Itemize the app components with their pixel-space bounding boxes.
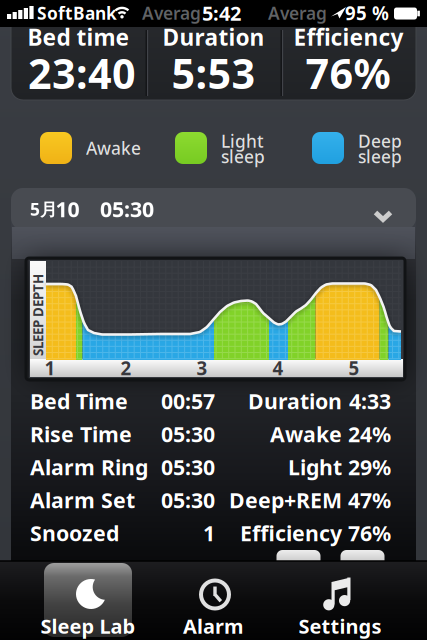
staticText: Efficiency: [293, 22, 403, 52]
staticText: 05:30: [100, 195, 154, 223]
staticText: Deep: [358, 129, 402, 152]
staticText: 23:40: [28, 46, 136, 100]
staticText: 4:33: [349, 387, 391, 415]
staticText: 05:30: [161, 453, 215, 481]
staticText: Deep+REM: [229, 486, 342, 514]
staticText: Light: [288, 453, 342, 481]
staticText: 05:30: [161, 420, 215, 448]
staticText: 76%: [305, 46, 390, 100]
staticText: Rise Time: [30, 420, 132, 448]
staticText: Light: [221, 129, 264, 152]
staticText: Alarm: [183, 613, 244, 639]
button[interactable]: Delete: [340, 550, 384, 568]
button[interactable]: Settings: [295, 563, 385, 637]
staticText: Duration: [162, 22, 264, 52]
staticText: Alarm Set: [30, 486, 135, 514]
staticText: 10: [55, 195, 79, 223]
staticText: sleep: [358, 145, 402, 168]
button[interactable]: 5月: [11, 188, 416, 230]
staticText: 47%: [348, 486, 391, 514]
staticText: 95 %: [345, 1, 389, 25]
staticText: Bed time: [27, 22, 129, 52]
staticText: 24%: [348, 420, 391, 448]
staticText: Duration: [248, 387, 342, 415]
staticText: 3: [196, 356, 207, 380]
staticText: sleep: [221, 145, 265, 168]
staticText: 29%: [348, 453, 391, 481]
staticText: Settings: [298, 613, 381, 639]
staticText: Awake: [270, 420, 342, 448]
staticText: 5:42: [202, 0, 241, 26]
staticText: Snoozed: [30, 519, 119, 547]
staticText: 5: [348, 356, 359, 380]
staticText: SLEEP DEPTH: [0, 306, 79, 324]
staticText: 4: [272, 356, 283, 380]
staticText: 00:57: [161, 387, 215, 415]
button[interactable]: Alarm: [168, 563, 258, 637]
staticText: Alarm Ring: [30, 453, 148, 481]
staticText: 5:53: [171, 46, 255, 100]
staticText: 2: [120, 356, 131, 380]
button[interactable]: Sleep Lab: [44, 563, 132, 637]
staticText: Bed Time: [30, 387, 128, 415]
button[interactable]: Share: [276, 550, 320, 568]
staticText: SoftBank: [37, 1, 117, 24]
staticText: 1: [203, 519, 215, 547]
staticText: 5月: [30, 197, 57, 220]
staticText: Awake: [86, 136, 141, 159]
staticText: Sleep Lab: [40, 613, 135, 639]
staticText: 1: [44, 356, 55, 380]
staticText: Efficiency: [240, 519, 342, 547]
staticText: Averag: [268, 1, 327, 24]
staticText: 05:30: [161, 486, 215, 514]
staticText: 76%: [348, 519, 391, 547]
staticText: Averag: [142, 1, 201, 24]
